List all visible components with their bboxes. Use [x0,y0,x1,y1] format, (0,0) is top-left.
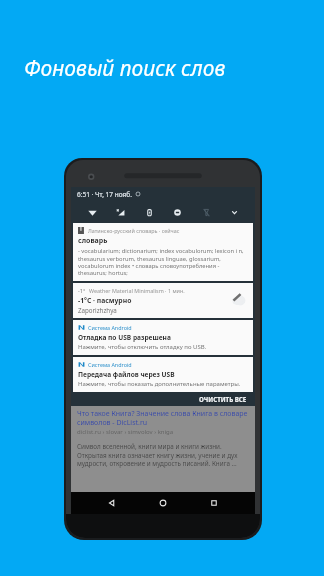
staticText: -1°C · пасмурно [78,296,132,305]
staticText: Латинско-русский словарь · сейчас [88,227,180,234]
button[interactable]: Wi-Fi [84,204,100,220]
button[interactable]: Развернуть [226,204,242,220]
button[interactable]: Мобильная сеть [112,204,128,220]
staticText: Отладка по USB разрешена [78,333,171,342]
staticText: - vocabularium; dictionarium; index voca… [78,247,248,277]
staticText: Weather Material Minimalism · 1 мин. [89,287,185,294]
staticText: словарь [78,236,108,246]
button[interactable]: ОЧИСТИТЬ ВСЕ [193,393,253,405]
staticText: 6:51 · Чт, 17 нояб. [77,190,132,199]
button[interactable]: -1° [73,283,253,318]
button[interactable]: Система Android [73,357,253,392]
staticText: Система Android [88,361,132,368]
button[interactable]: Главный экран [153,493,173,513]
staticText: Символ вселенной, книги мира и книги жиз… [77,442,249,467]
staticText: Что такое Книга? Значение слова Книга в … [77,409,249,427]
button[interactable]: Латинско-русский словарь · сейчас [73,223,253,281]
button[interactable]: Система Android [73,320,253,355]
staticText: Передача файлов через USB [78,370,175,379]
button[interactable]: Обзор [204,493,224,513]
staticText: Система Android [88,324,132,331]
staticText: ОЧИСТИТЬ ВСЕ [199,395,247,403]
button[interactable]: Назад [102,493,122,513]
staticText: Нажмите, чтобы отключить отладку по USB. [78,343,207,351]
staticText: Нажмите, чтобы показать дополнительные п… [78,380,241,388]
staticText: -1° [78,287,86,294]
staticText: Фоновый поиск слов [24,54,226,83]
button[interactable]: Батарея [141,204,157,220]
button[interactable]: Изменить [226,287,248,309]
button[interactable]: Не беспокоить [169,204,185,220]
staticText: Zaporizhzhya [78,306,117,314]
button[interactable]: Фонарик [198,204,214,220]
staticText: diclist.ru › slovar › simvolov › kniga [77,428,174,436]
